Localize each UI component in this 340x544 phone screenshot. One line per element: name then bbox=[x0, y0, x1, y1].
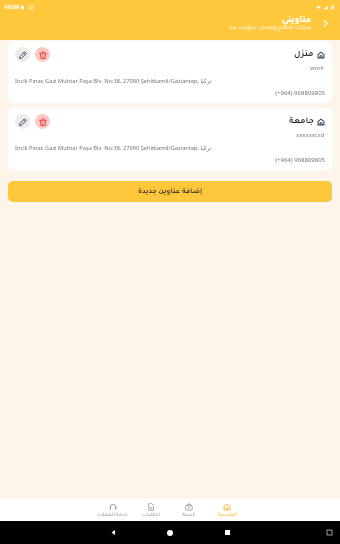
button[interactable]: الطلبات bbox=[132, 503, 170, 518]
button[interactable]: Edit bbox=[15, 114, 30, 129]
button[interactable]: Edit bbox=[15, 47, 30, 62]
staticText: الرئيسية bbox=[218, 512, 237, 518]
staticText: يمكنك تصفح وتعديل عناوينك هنا bbox=[229, 25, 312, 31]
other: Open bbox=[317, 15, 333, 31]
staticText: 10:09 bbox=[4, 3, 20, 11]
staticText: (+964) 968809805 bbox=[275, 156, 325, 164]
staticText: İncili Pınar, Gazi Muhtar Paşa Blv. No:3… bbox=[15, 144, 212, 152]
staticText: منزل bbox=[294, 50, 314, 59]
staticText: جامعة bbox=[289, 117, 314, 126]
button[interactable]: خدمة العملاء bbox=[94, 503, 132, 518]
staticText: İncili Pınar, Gazi Muhtar Paşa Blv. No:3… bbox=[15, 77, 212, 85]
staticText: عناويني bbox=[282, 16, 312, 25]
button[interactable]: عناويني bbox=[229, 15, 333, 31]
staticText: work bbox=[310, 64, 325, 72]
button[interactable]: الرئيسية bbox=[208, 503, 246, 518]
button[interactable]: Delete bbox=[35, 47, 50, 62]
button[interactable]: Delete bbox=[35, 114, 50, 129]
button[interactable]: Edit bbox=[8, 108, 332, 170]
staticText: xxxxxxcsd bbox=[296, 131, 325, 139]
staticText: إضافة عناوين جديدة bbox=[138, 188, 203, 195]
staticText: خدمة العملاء bbox=[98, 512, 128, 518]
button[interactable]: السلة bbox=[170, 503, 208, 518]
staticText: (+964) 968809805 bbox=[275, 89, 325, 97]
staticText: الطلبات bbox=[142, 512, 160, 518]
button[interactable]: Edit bbox=[8, 41, 332, 103]
staticText: السلة bbox=[182, 512, 196, 518]
button[interactable]: إضافة عناوين جديدة bbox=[8, 181, 332, 202]
